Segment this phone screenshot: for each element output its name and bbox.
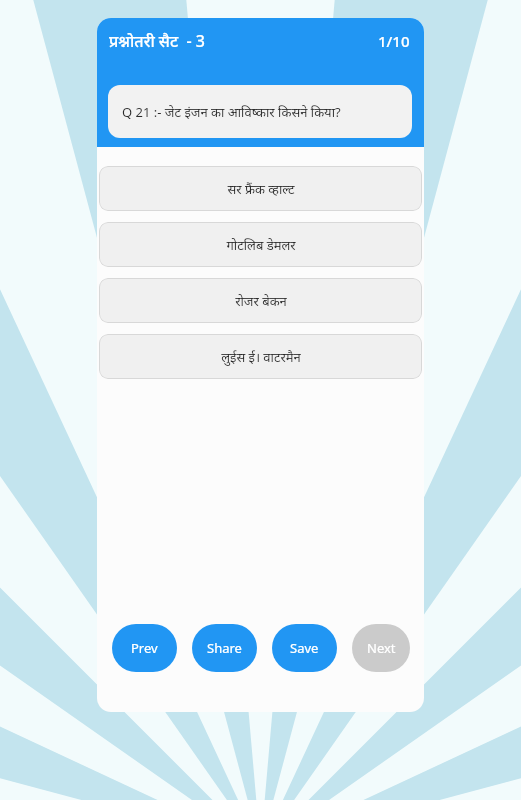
button[interactable]: लुईस ई। वाटरमैन — [99, 334, 422, 379]
staticText: Q 21 :- जेट इंजन का आविष्कार किसने किया? — [122, 103, 341, 121]
button[interactable]: रोजर बेकन — [99, 278, 422, 323]
staticText: Save — [290, 639, 319, 657]
staticText: प्रश्नोतरी सैट - 3 — [109, 30, 205, 52]
button[interactable]: Next — [352, 624, 410, 672]
button[interactable]: सर फ्रैंक व्हाल्ट — [99, 166, 422, 211]
staticText: गोटलिब डेमलर — [226, 236, 296, 254]
button[interactable]: Prev — [112, 624, 177, 672]
staticText: Share — [207, 639, 242, 657]
button[interactable]: Save — [272, 624, 337, 672]
button[interactable]: गोटलिब डेमलर — [99, 222, 422, 267]
staticText: रोजर बेकन — [235, 292, 287, 310]
staticText: Next — [367, 639, 396, 657]
button[interactable]: Share — [192, 624, 257, 672]
staticText: Prev — [131, 639, 158, 657]
staticText: लुईस ई। वाटरमैन — [221, 348, 301, 366]
staticText: सर फ्रैंक व्हाल्ट — [227, 180, 295, 198]
staticText: 1/10 — [378, 31, 410, 51]
